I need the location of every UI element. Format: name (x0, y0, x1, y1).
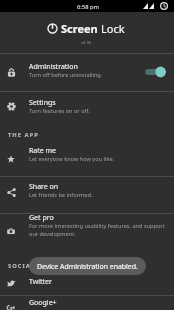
staticText: Administration (29, 62, 78, 72)
button[interactable]: Settings (0, 91, 174, 127)
staticText: Twitter (29, 277, 52, 287)
staticText: v2.9b (81, 40, 92, 45)
button[interactable]: Screen Lock (47, 21, 125, 36)
staticText: Get pro (29, 213, 54, 223)
staticText: 6:58 pm (77, 3, 99, 11)
staticText: SOCIAL (8, 262, 36, 270)
staticText: Lock (101, 21, 125, 36)
staticText: THE APP (8, 131, 39, 139)
button[interactable]: Share on (0, 176, 174, 213)
staticText: Share on (29, 182, 59, 192)
other: Screen Lock (47, 23, 58, 34)
button[interactable]: Administration (0, 53, 174, 91)
button[interactable]: Google+ (0, 295, 174, 310)
staticText: For more interesting usability features,… (29, 222, 165, 238)
staticText: Turn features on or off. (29, 107, 90, 115)
button[interactable]: Twitter (0, 271, 174, 295)
button[interactable]: Get pro (0, 213, 174, 246)
button[interactable]: Rate me (0, 140, 174, 176)
staticText: Screen (61, 21, 101, 36)
staticText: Let everyone know how you like. (29, 155, 115, 163)
staticText: Turn off before uninstalling. (29, 71, 103, 79)
staticText: Settings (29, 98, 56, 108)
staticText: Rate me (29, 146, 57, 156)
staticText: Device Administration enabled. (37, 262, 138, 271)
other: Administration toggle (145, 66, 166, 78)
staticText: Let friends be informed. (29, 191, 93, 199)
staticText: Google+ (29, 298, 57, 308)
